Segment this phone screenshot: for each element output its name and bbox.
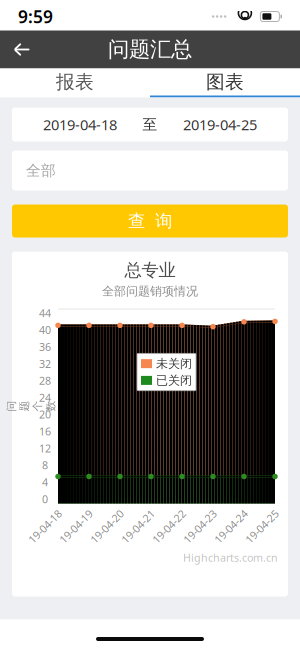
staticText: 全部问题销项情况 [102, 284, 198, 298]
staticText: 19-04-18 [24, 519, 66, 534]
staticText: 36 [39, 340, 51, 354]
staticText: 2019-04-18 [43, 115, 117, 134]
staticText: 图表 [206, 70, 244, 93]
staticText: 19-04-23 [179, 519, 221, 534]
staticText: 报表 [56, 70, 94, 93]
staticText: 2019-04-25 [183, 115, 257, 134]
staticText: 全部 [26, 161, 56, 179]
staticText: 20 [39, 407, 51, 422]
staticText: 19-04-19 [55, 519, 97, 534]
staticText: 总专业 [124, 259, 175, 281]
staticText: 24 [39, 390, 51, 405]
staticText: Highcharts.com.cn [183, 550, 278, 565]
staticText: 问题汇总 [108, 36, 192, 63]
staticText: 9:59 [18, 5, 53, 28]
staticText: 未关闭 [156, 356, 192, 371]
staticText: 44 [39, 306, 51, 320]
staticText: 19-04-22 [148, 519, 190, 534]
button[interactable]: 图表 [150, 68, 300, 95]
staticText: 已关闭 [156, 373, 192, 388]
button[interactable]: 报表 [0, 68, 150, 95]
staticText: 19-04-21 [117, 519, 159, 534]
staticText: 问题个数 [25, 380, 36, 432]
button[interactable]: 查 询 [12, 204, 288, 237]
button[interactable]: 2019-04-18 [12, 107, 288, 141]
button[interactable]: 返回 [0, 30, 44, 68]
staticText: 16 [39, 424, 51, 438]
staticText: 32 [39, 357, 51, 371]
staticText: 4 [42, 475, 48, 489]
staticText: 40 [39, 323, 51, 337]
staticText: 8 [42, 458, 48, 472]
button[interactable]: 全部 [12, 150, 288, 190]
staticText: 19-04-20 [86, 519, 128, 534]
staticText: 19-04-25 [241, 519, 283, 534]
staticText: 至 [142, 115, 157, 133]
staticText: 12 [39, 441, 51, 455]
staticText: 19-04-24 [210, 519, 252, 534]
staticText: 查 询 [128, 210, 172, 232]
staticText: 0 [42, 492, 48, 506]
staticText: 28 [39, 374, 51, 388]
